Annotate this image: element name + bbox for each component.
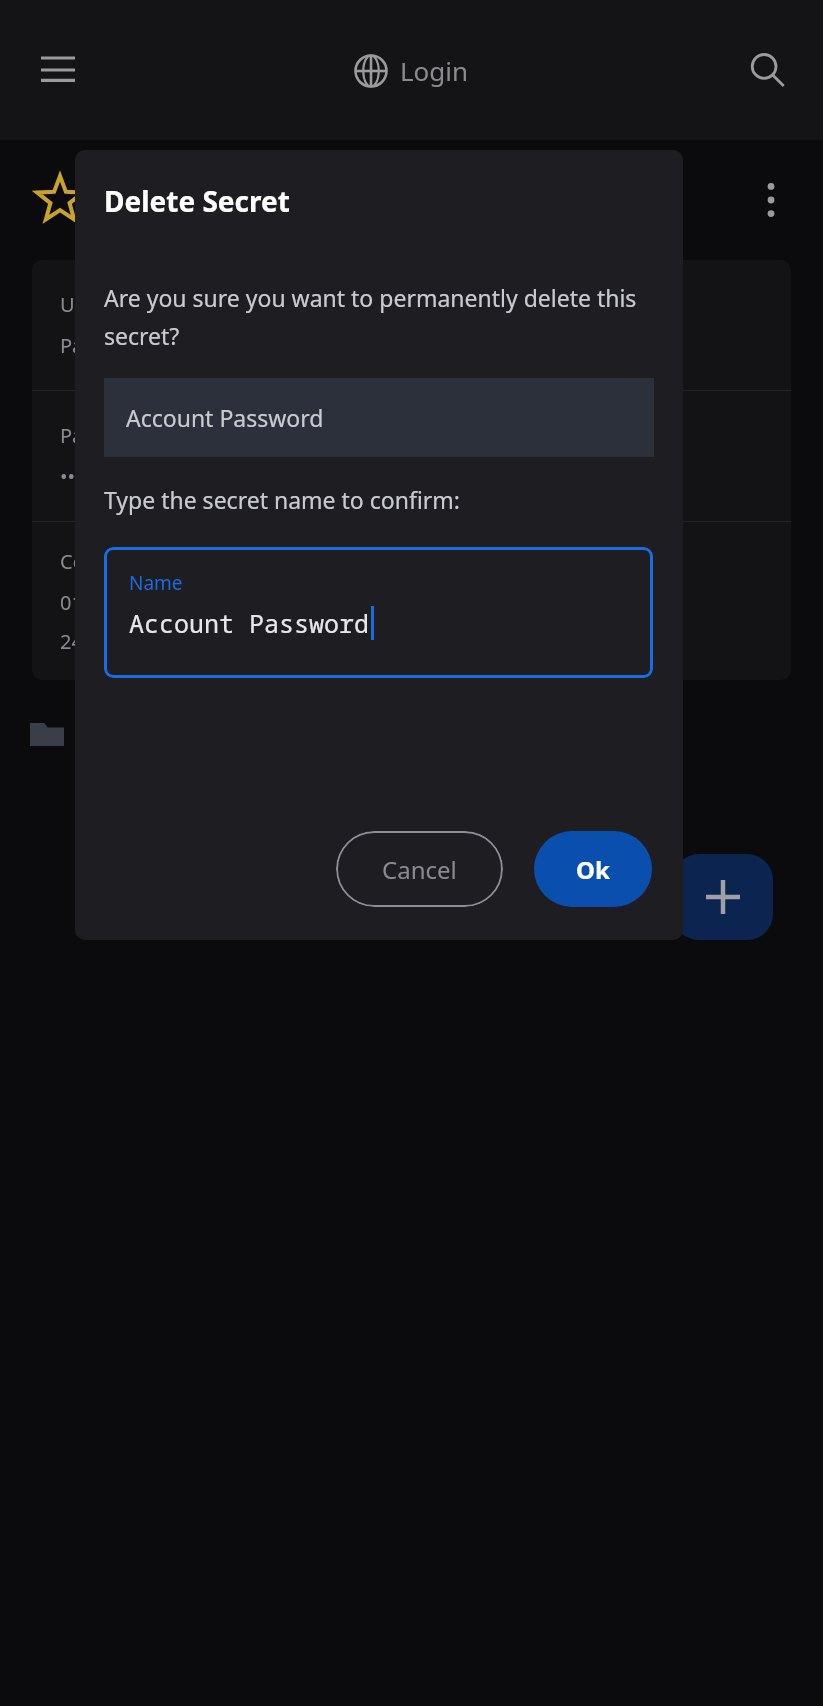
staticText: Name: [129, 570, 183, 596]
button[interactable]: Add: [673, 854, 773, 940]
staticText: Account Password: [129, 606, 370, 640]
staticText: Delete Secret: [104, 182, 290, 220]
button[interactable]: Default: [0, 702, 823, 762]
staticText: Are you sure you want to permanently del…: [104, 282, 661, 352]
staticText: Password: [60, 422, 151, 449]
button[interactable]: Name: [104, 547, 653, 678]
button[interactable]: More options: [743, 172, 799, 228]
staticText: Ok: [576, 853, 610, 886]
staticText: Type the secret name to confirm:: [104, 484, 460, 515]
button[interactable]: Search: [739, 42, 795, 98]
staticText: 24-01-2022: [60, 628, 165, 655]
staticText: Login: [400, 53, 469, 88]
button[interactable]: Cancel: [336, 831, 503, 907]
staticText: Cancel: [382, 853, 457, 886]
button[interactable]: Username: [32, 260, 791, 680]
staticText: Username: [60, 291, 158, 318]
staticText: Comment: [60, 548, 153, 575]
staticText: •••••••••: [60, 463, 128, 490]
staticText: Account Password: [126, 402, 324, 433]
button[interactable]: Ok: [534, 831, 652, 907]
button[interactable]: Favorite: [28, 168, 92, 232]
button[interactable]: Menu: [30, 42, 86, 98]
staticText: 01-09-2022: [60, 589, 165, 616]
staticText: Pa55w0rd-user: [60, 332, 202, 359]
